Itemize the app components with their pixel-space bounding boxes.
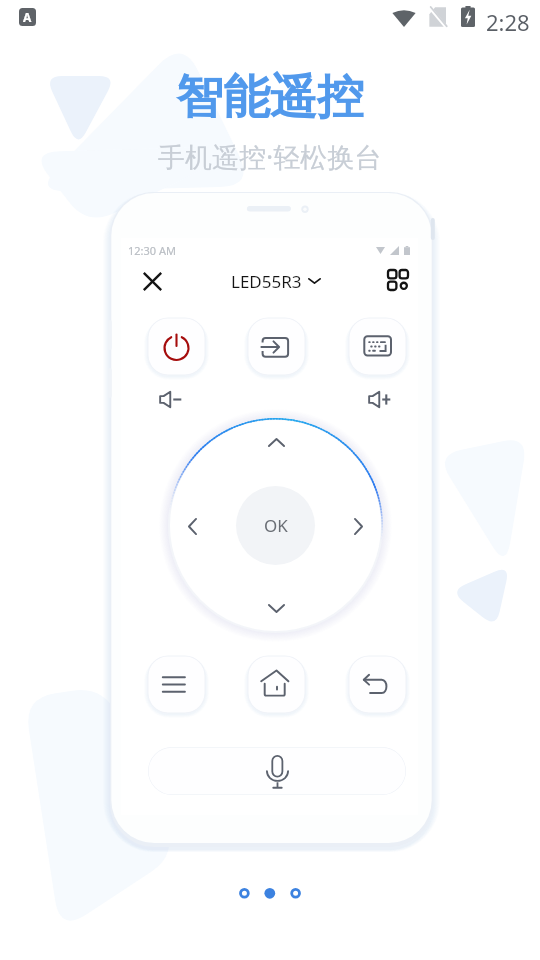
button[interactable]: LED55R3 xyxy=(231,268,321,294)
button[interactable]: Keyboard xyxy=(344,313,411,380)
button[interactable]: Home xyxy=(243,651,310,718)
button[interactable]: Back xyxy=(344,651,411,718)
staticText: A xyxy=(23,9,32,25)
button[interactable]: Voice search xyxy=(148,747,406,795)
button[interactable]: Right xyxy=(344,505,373,547)
button[interactable]: Left xyxy=(178,505,207,547)
button[interactable]: Volume down xyxy=(148,382,192,416)
button[interactable]: Volume up xyxy=(357,382,401,416)
button[interactable]: Apps xyxy=(382,264,414,296)
button[interactable]: Power xyxy=(143,313,210,380)
staticText: 12:30 AM xyxy=(128,243,176,258)
button[interactable]: OK xyxy=(236,486,315,565)
staticText: OK xyxy=(264,514,288,537)
staticText: 智能遥控 xyxy=(176,68,364,127)
button[interactable]: Close xyxy=(136,265,168,297)
staticText: LED55R3 xyxy=(231,270,302,293)
button[interactable]: Down xyxy=(255,594,297,623)
button[interactable]: Menu xyxy=(143,651,210,718)
staticText: 2:28 xyxy=(486,7,530,37)
staticText: 手机遥控·轻松换台 xyxy=(158,138,382,175)
button[interactable]: Up xyxy=(255,428,297,457)
button[interactable]: Input source xyxy=(243,313,310,380)
other: App icon xyxy=(19,8,36,26)
